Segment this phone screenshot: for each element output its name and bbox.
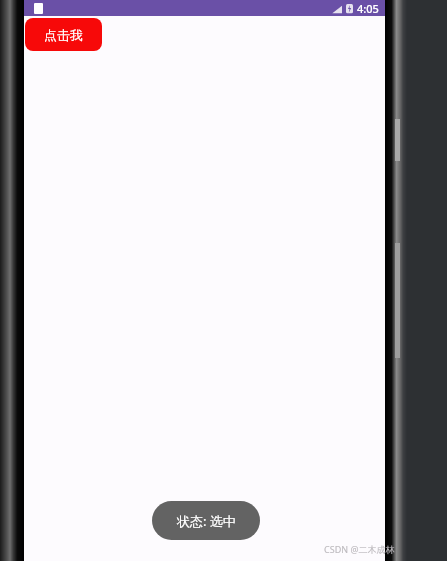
staticText: 4:05 [357, 1, 379, 16]
staticText: 状态: 选中 [177, 512, 236, 530]
staticText: 点击我 [44, 27, 83, 43]
staticText: CSDN @二木成林 [324, 543, 395, 555]
button[interactable]: 点击我 [25, 18, 102, 51]
